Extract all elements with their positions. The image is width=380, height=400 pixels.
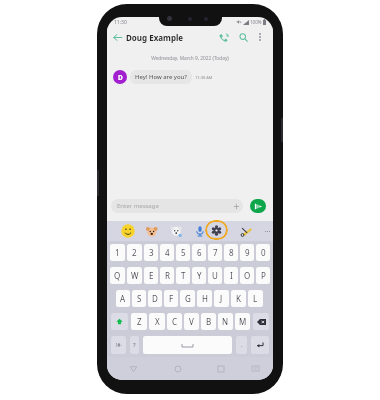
button[interactable]: W (127, 267, 142, 284)
button[interactable]: J (214, 290, 229, 307)
staticText: P (261, 270, 266, 281)
button[interactable]: !#· (111, 336, 126, 354)
button[interactable]: Voice input (193, 221, 207, 241)
button[interactable]: 8 (224, 244, 238, 261)
button[interactable]: X (149, 313, 165, 330)
button[interactable]: 1 (110, 244, 125, 261)
button[interactable]: Backspace (253, 313, 269, 330)
button[interactable]: Send (250, 199, 266, 213)
staticText: V (189, 316, 194, 327)
staticText: N (222, 316, 229, 327)
staticText: 5 (181, 247, 186, 258)
staticText: 8 (229, 247, 234, 258)
staticText: K (236, 293, 241, 304)
button[interactable]: More (262, 221, 273, 241)
staticText: . (241, 341, 243, 349)
button[interactable]: B (201, 313, 216, 330)
staticText: A (120, 293, 126, 304)
button[interactable]: Enter (251, 336, 269, 354)
button[interactable]: T (176, 267, 190, 284)
staticText: S (137, 293, 142, 304)
staticText: Hey! How are you? (135, 73, 187, 81)
staticText: 1 (115, 247, 120, 258)
staticText: E (149, 270, 154, 281)
staticText: M (239, 316, 247, 327)
button[interactable]: S (132, 290, 146, 307)
button[interactable]: Enter message (111, 199, 243, 213)
button[interactable]: Recents (214, 357, 228, 380)
staticText: C (172, 316, 178, 327)
button[interactable]: Q (110, 267, 125, 284)
staticText: 3 (149, 247, 154, 258)
staticText: I (230, 270, 233, 281)
staticText: L (253, 293, 258, 304)
button[interactable]: C (167, 313, 182, 330)
staticText: 11:30 (114, 19, 127, 26)
button[interactable]: O (240, 267, 254, 284)
button[interactable]: L (248, 290, 263, 307)
staticText: 2 (132, 247, 137, 258)
button[interactable]: 7 (208, 244, 222, 261)
button[interactable]: A (116, 290, 130, 307)
staticText: Q (114, 270, 121, 281)
button[interactable]: Search (236, 27, 250, 47)
button[interactable]: G (180, 290, 195, 307)
staticText: Wednesday, March 9, 2022 (Today) (107, 55, 273, 62)
staticText: Z (137, 316, 142, 327)
staticText: X (155, 316, 160, 327)
staticText: T (181, 270, 186, 281)
button[interactable]: 9 (240, 244, 254, 261)
button[interactable]: V (184, 313, 199, 330)
button[interactable]: GIF (169, 221, 183, 241)
staticText: D (118, 73, 123, 82)
button[interactable]: Emoji (121, 221, 135, 241)
button[interactable]: Space (143, 336, 232, 354)
staticText: G (185, 293, 191, 304)
staticText: 100% (250, 19, 262, 25)
staticText: D (152, 293, 158, 304)
button[interactable]: More options (253, 27, 266, 47)
button[interactable]: Stickers (144, 221, 158, 241)
button[interactable]: 2 (127, 244, 142, 261)
button[interactable]: 0 (256, 244, 270, 261)
button[interactable]: P (256, 267, 270, 284)
button[interactable]: Back (126, 357, 140, 380)
button[interactable]: Settings (205, 220, 228, 240)
button[interactable]: N (218, 313, 233, 330)
button[interactable]: Back (110, 27, 124, 47)
staticText: 9 (245, 247, 250, 258)
staticText: Y (197, 270, 202, 281)
button[interactable]: Hide keyboard (248, 357, 262, 380)
staticText: !#· (116, 342, 122, 349)
button[interactable]: 3 (144, 244, 158, 261)
button[interactable]: E (144, 267, 158, 284)
button[interactable]: Z (131, 313, 147, 330)
button[interactable]: ? (130, 336, 139, 354)
button[interactable]: 4 (160, 244, 174, 261)
staticText: B (206, 316, 212, 327)
button[interactable]: . (236, 336, 247, 354)
staticText: Enter message (117, 202, 159, 210)
button[interactable]: Home (171, 357, 185, 380)
button[interactable]: K (231, 290, 246, 307)
button[interactable]: D (148, 290, 162, 307)
button[interactable]: Tools (240, 221, 253, 241)
staticText: J (220, 293, 223, 304)
staticText: 7 (213, 247, 218, 258)
staticText: O (244, 270, 251, 281)
button[interactable]: R (160, 267, 174, 284)
button[interactable]: F (164, 290, 178, 307)
button[interactable]: Call (216, 27, 230, 47)
staticText: 0 (261, 247, 266, 258)
button[interactable]: H (197, 290, 212, 307)
staticText: ? (133, 341, 136, 349)
button[interactable]: Y (192, 267, 206, 284)
button[interactable]: M (235, 313, 250, 330)
staticText: H (202, 293, 208, 304)
button[interactable]: 5 (176, 244, 190, 261)
staticText: W (131, 270, 139, 281)
button[interactable]: U (208, 267, 222, 284)
button[interactable]: I (224, 267, 238, 284)
button[interactable]: Shift (111, 313, 128, 330)
button[interactable]: 6 (192, 244, 206, 261)
